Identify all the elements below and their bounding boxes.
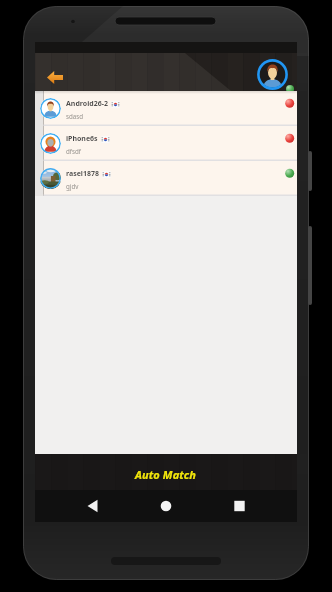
staticText: rasel1878 [66,169,99,179]
staticText: dfsdf [66,147,81,155]
staticText: Android26-2 [66,99,108,109]
button[interactable] [35,490,123,522]
button[interactable]: Android26-2 [35,91,297,126]
staticText: gjdv [66,182,79,190]
button[interactable]: Auto Match [35,454,297,490]
staticText: sdasd [66,112,84,120]
staticText: iPhone6s [66,134,98,144]
button[interactable] [123,490,210,522]
button[interactable] [41,67,69,87]
button[interactable]: rasel1878 [35,161,297,196]
button[interactable] [257,59,288,90]
button[interactable]: iPhone6s [35,126,297,161]
staticText: Auto Match [135,467,197,482]
button[interactable] [210,490,297,522]
